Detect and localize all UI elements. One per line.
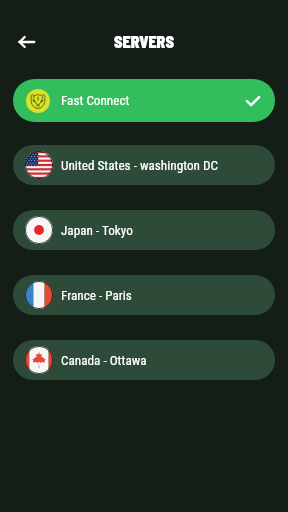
staticText: Fast Connect	[61, 93, 130, 108]
staticText: SERVERS	[114, 32, 174, 51]
button[interactable]: France - Paris	[13, 275, 275, 315]
button[interactable]: Japan - Tokyo	[13, 210, 275, 250]
button[interactable]: Fast Connect	[13, 79, 275, 122]
staticText: United States - washington DC	[61, 158, 218, 173]
button[interactable]: Canada - Ottawa	[13, 340, 275, 380]
staticText: France - Paris	[61, 288, 132, 303]
button[interactable]: United States - washington DC	[13, 145, 275, 185]
staticText: Japan - Tokyo	[61, 223, 133, 238]
button[interactable]: Back	[14, 29, 40, 55]
staticText: Canada - Ottawa	[61, 353, 147, 368]
